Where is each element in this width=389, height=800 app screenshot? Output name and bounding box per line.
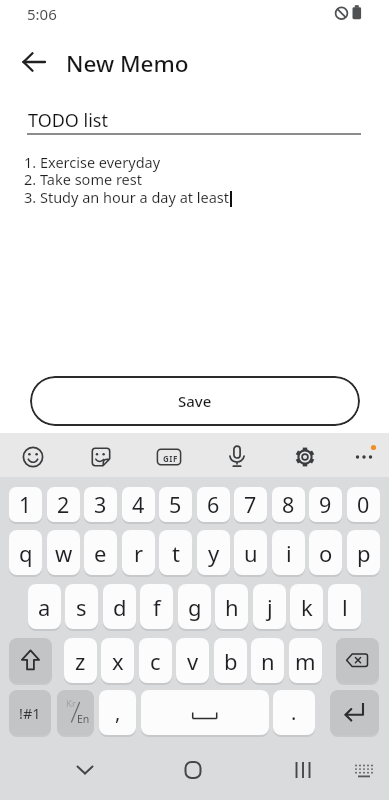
staticText: g <box>188 592 202 622</box>
staticText: y <box>208 538 220 568</box>
staticText: o <box>319 538 333 568</box>
button[interactable]: , <box>99 690 136 735</box>
staticText: h <box>225 592 239 622</box>
button[interactable]: r <box>122 530 155 575</box>
button[interactable] <box>13 437 53 477</box>
button[interactable]: v <box>176 638 209 683</box>
staticText: t <box>172 538 180 568</box>
staticText: e <box>94 538 107 568</box>
staticText: GIF <box>163 453 178 464</box>
button[interactable]: s <box>65 584 98 629</box>
button[interactable]: Save <box>30 376 360 426</box>
staticText: 4 <box>132 490 145 519</box>
button[interactable]: u <box>234 530 267 575</box>
staticText: 6 <box>207 490 220 519</box>
button[interactable]: Kr <box>57 690 94 735</box>
button[interactable]: 5 <box>159 487 192 522</box>
button[interactable]: e <box>84 530 117 575</box>
button[interactable] <box>345 752 383 790</box>
button[interactable]: d <box>103 584 136 629</box>
button[interactable]: 0 <box>347 487 380 522</box>
staticText: f <box>153 592 161 622</box>
staticText: . <box>291 699 297 726</box>
staticText: x <box>112 646 124 676</box>
button[interactable]: x <box>101 638 134 683</box>
button[interactable]: y <box>197 530 230 575</box>
button[interactable]: 2 <box>47 487 80 522</box>
staticText: i <box>286 538 292 568</box>
staticText: 1. Exercise everyday 2. Take some rest 3… <box>24 152 229 208</box>
button[interactable]: f <box>140 584 173 629</box>
button[interactable]: . <box>273 690 315 735</box>
staticText: v <box>187 646 199 676</box>
button[interactable]: 9 <box>309 487 342 522</box>
button[interactable] <box>285 437 325 477</box>
button[interactable] <box>149 437 189 477</box>
staticText: 9 <box>319 490 332 519</box>
button[interactable]: t <box>159 530 192 575</box>
staticText: c <box>150 646 161 676</box>
staticText: 7 <box>244 490 257 519</box>
staticText: En <box>77 712 90 726</box>
button[interactable] <box>281 748 325 792</box>
staticText: q <box>19 538 33 568</box>
staticText: Save <box>178 391 212 411</box>
button[interactable]: j <box>253 584 286 629</box>
staticText: m <box>295 646 316 676</box>
button[interactable] <box>9 638 52 683</box>
button[interactable]: 4 <box>122 487 155 522</box>
button[interactable]: 6 <box>197 487 230 522</box>
button[interactable]: o <box>309 530 342 575</box>
button[interactable]: g <box>178 584 211 629</box>
staticText: d <box>113 592 127 622</box>
button[interactable] <box>336 638 379 683</box>
button[interactable] <box>12 40 56 84</box>
button[interactable] <box>344 437 384 477</box>
staticText: z <box>75 646 86 676</box>
button[interactable]: 8 <box>272 487 305 522</box>
staticText: s <box>76 592 87 622</box>
button[interactable]: z <box>64 638 97 683</box>
staticText: 1 <box>19 490 32 519</box>
staticText: New Memo <box>66 48 189 79</box>
staticText: 0 <box>357 490 370 519</box>
button[interactable]: l <box>328 584 361 629</box>
staticText: 5:06 <box>27 4 57 24</box>
staticText: Kr <box>66 697 76 710</box>
button[interactable]: c <box>139 638 172 683</box>
staticText: !#1 <box>19 703 41 723</box>
staticText: u <box>244 538 258 568</box>
button[interactable] <box>217 437 257 477</box>
button[interactable]: q <box>9 530 42 575</box>
button[interactable]: n <box>251 638 284 683</box>
staticText: l <box>342 592 348 622</box>
staticText: k <box>301 592 313 622</box>
button[interactable]: p <box>347 530 380 575</box>
button[interactable]: w <box>47 530 80 575</box>
staticText: a <box>38 592 51 622</box>
staticText: TODO list <box>28 108 108 133</box>
staticText: p <box>357 538 371 568</box>
staticText: w <box>55 538 73 568</box>
staticText: b <box>224 646 238 676</box>
button[interactable] <box>330 690 379 735</box>
button[interactable]: 1 <box>9 487 42 522</box>
button[interactable] <box>63 748 107 792</box>
staticText: 5 <box>169 490 182 519</box>
staticText: 8 <box>282 490 295 519</box>
button[interactable] <box>81 437 121 477</box>
button[interactable]: k <box>290 584 323 629</box>
button[interactable]: b <box>214 638 247 683</box>
button[interactable]: i <box>272 530 305 575</box>
button[interactable]: 3 <box>84 487 117 522</box>
button[interactable] <box>141 690 269 735</box>
button[interactable]: a <box>28 584 61 629</box>
staticText: j <box>267 592 273 622</box>
button[interactable]: !#1 <box>9 690 51 735</box>
button[interactable]: m <box>289 638 322 683</box>
button[interactable]: 7 <box>234 487 267 522</box>
staticText: n <box>261 646 275 676</box>
staticText: 3 <box>94 490 107 519</box>
button[interactable]: h <box>215 584 248 629</box>
button[interactable] <box>171 748 215 792</box>
